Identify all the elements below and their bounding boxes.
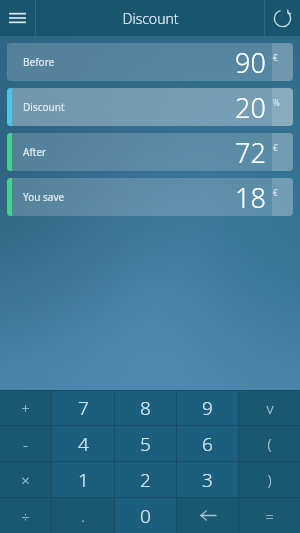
button[interactable]: % <box>272 88 293 126</box>
staticText: 2 <box>140 467 151 493</box>
button[interactable]: = <box>239 498 300 533</box>
staticText: 9 <box>202 395 213 421</box>
staticText: + <box>21 398 30 418</box>
button[interactable]: Discount <box>7 88 293 126</box>
button[interactable]: v <box>239 391 300 425</box>
button[interactable]: € <box>272 43 293 81</box>
staticText: - <box>23 434 28 454</box>
button[interactable]: Backspace <box>177 498 238 533</box>
staticText: = <box>265 506 274 526</box>
button[interactable]: 1 <box>52 462 114 497</box>
staticText: % <box>273 97 280 108</box>
staticText: ÷ <box>21 506 30 526</box>
button[interactable]: × <box>0 462 51 497</box>
staticText: 90 <box>235 44 266 81</box>
button[interactable]: € <box>272 133 293 171</box>
button[interactable]: 3 <box>177 462 238 497</box>
staticText: 20 <box>235 89 266 126</box>
button[interactable]: After <box>7 133 293 171</box>
staticText: Discount <box>23 100 65 114</box>
staticText: € <box>273 52 278 63</box>
button[interactable]: ( <box>239 426 300 461</box>
button[interactable]: 0 <box>115 498 176 533</box>
staticText: v <box>266 398 274 418</box>
button[interactable]: Before <box>7 43 293 81</box>
staticText: ) <box>267 470 272 490</box>
staticText: € <box>273 142 278 153</box>
staticText: You save <box>23 190 65 204</box>
staticText: 5 <box>140 431 151 457</box>
staticText: 0 <box>140 503 151 529</box>
staticText: 72 <box>235 134 266 171</box>
staticText: Before <box>23 55 55 69</box>
staticText: . <box>81 506 85 526</box>
button[interactable]: 8 <box>115 391 176 425</box>
button[interactable]: Reset <box>265 0 300 36</box>
staticText: € <box>273 187 278 198</box>
button[interactable]: ÷ <box>0 498 51 533</box>
button[interactable]: 4 <box>52 426 114 461</box>
button[interactable]: - <box>0 426 51 461</box>
button[interactable]: 6 <box>177 426 238 461</box>
staticText: 18 <box>235 179 266 216</box>
button[interactable]: Open navigation menu <box>0 0 35 36</box>
staticText: ( <box>267 434 272 454</box>
staticText: × <box>21 470 30 490</box>
button[interactable]: ) <box>239 462 300 497</box>
button[interactable]: 9 <box>177 391 238 425</box>
button[interactable]: You save <box>7 178 293 216</box>
button[interactable]: 5 <box>115 426 176 461</box>
staticText: Discount <box>122 9 179 28</box>
staticText: 7 <box>78 395 89 421</box>
staticText: 1 <box>78 467 89 493</box>
staticText: After <box>23 145 47 159</box>
button[interactable]: € <box>272 178 293 216</box>
button[interactable]: 2 <box>115 462 176 497</box>
staticText: 8 <box>140 395 151 421</box>
staticText: 3 <box>202 467 213 493</box>
staticText: 6 <box>202 431 213 457</box>
button[interactable]: . <box>52 498 114 533</box>
button[interactable]: + <box>0 391 51 425</box>
staticText: 4 <box>78 431 89 457</box>
button[interactable]: 7 <box>52 391 114 425</box>
